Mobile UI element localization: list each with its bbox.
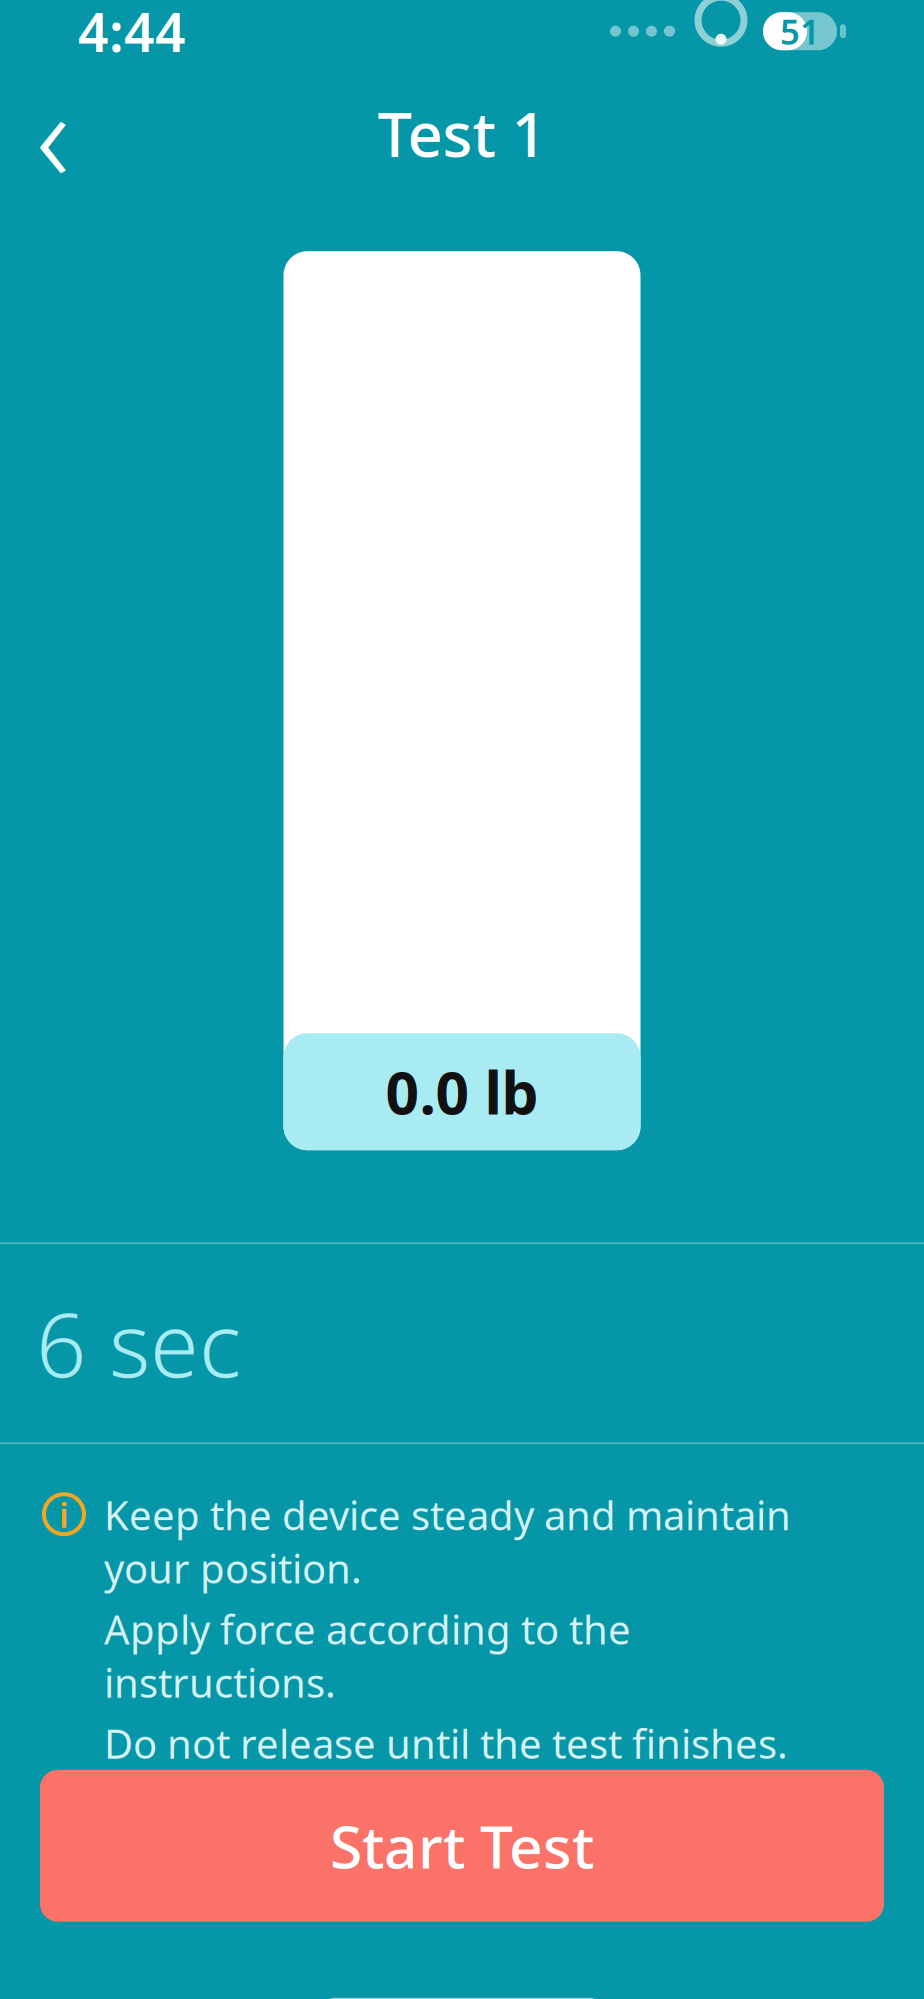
button[interactable]: Back — [8, 88, 98, 178]
staticText: Keep the device steady and maintain your… — [104, 1488, 791, 1594]
staticText: Do not release until the test finishes. — [104, 1717, 788, 1770]
staticText: 51 — [780, 8, 820, 54]
staticText: Test 1 — [377, 92, 546, 174]
staticText: Start Test — [330, 1807, 594, 1885]
staticText: 4:44 — [78, 0, 186, 67]
staticText: Apply force according to the instruction… — [104, 1602, 631, 1709]
button[interactable]: Start Test — [40, 1770, 884, 1922]
staticText: 0.0 lb — [385, 1053, 538, 1131]
staticText: 6 sec — [36, 1285, 241, 1402]
staticText: ‹ — [36, 48, 70, 218]
staticText: i — [59, 1491, 69, 1537]
